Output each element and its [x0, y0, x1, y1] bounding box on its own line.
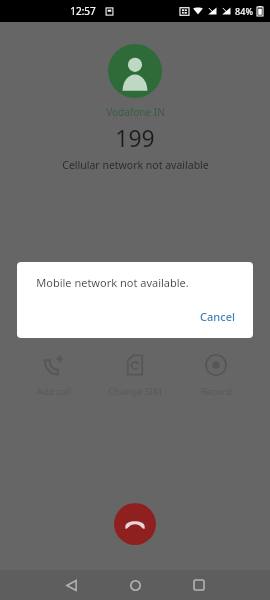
button[interactable]: Change SIM	[98, 350, 172, 398]
staticText: 199	[115, 122, 155, 153]
button[interactable]: Record	[179, 350, 253, 398]
button[interactable]: Recents	[186, 572, 212, 598]
staticText: Cancel	[200, 309, 235, 324]
staticText: Record	[200, 385, 232, 398]
button[interactable]: Home	[122, 572, 148, 598]
staticText: Change SIM	[108, 385, 162, 398]
staticText: Vodafone IN	[106, 105, 165, 119]
staticText: 84%	[235, 5, 253, 17]
button[interactable]: End call	[114, 503, 156, 545]
staticText: Mobile network not available.	[36, 275, 189, 290]
button[interactable]: Back	[58, 572, 84, 598]
staticText: 12:57	[70, 4, 96, 18]
staticText: Cellular network not available	[62, 158, 209, 172]
button[interactable]: Cancel	[188, 304, 247, 329]
staticText: Add call	[36, 385, 72, 398]
